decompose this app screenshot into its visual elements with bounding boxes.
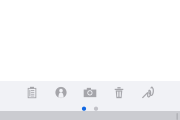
button[interactable]: Scan Document bbox=[17, 85, 46, 99]
button[interactable]: Take Photo bbox=[75, 85, 104, 99]
button[interactable]: Signature bbox=[46, 85, 75, 99]
button[interactable]: Delete bbox=[104, 85, 133, 99]
button[interactable]: Markup bbox=[133, 85, 162, 99]
